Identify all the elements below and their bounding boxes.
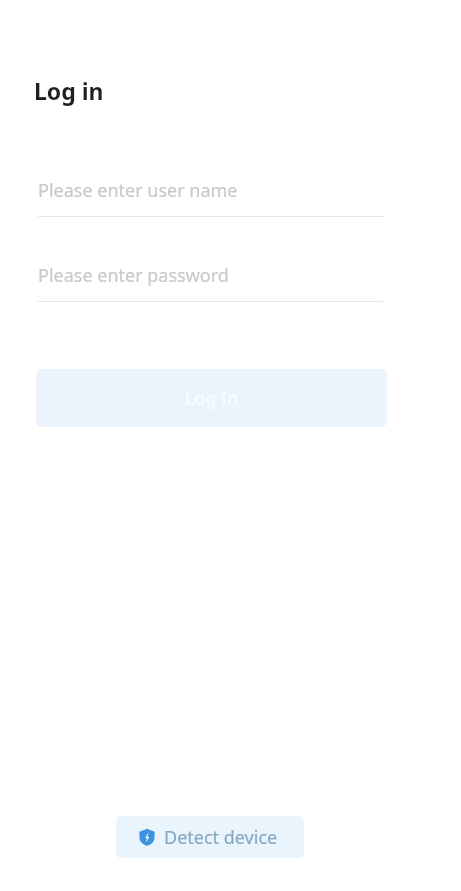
staticText: Log in [34,75,104,106]
button[interactable]: Please enter password [38,263,383,302]
staticText: Please enter user name [38,178,238,203]
staticText: Please enter password [38,263,229,288]
button[interactable]: Please enter user name [38,178,383,217]
staticText: Detect device [164,825,278,850]
staticText: Log In [185,386,239,411]
other: Security shield [138,828,156,846]
button[interactable]: Security shield [116,816,304,858]
